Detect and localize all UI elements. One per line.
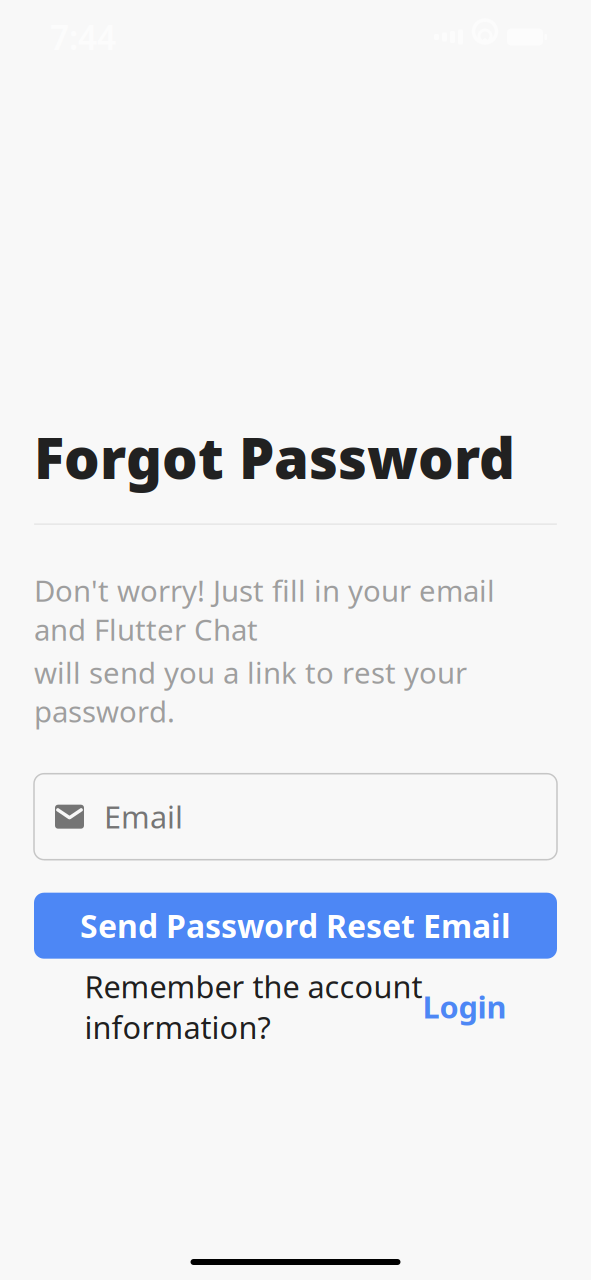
- staticText: Remember the account information?: [84, 966, 422, 1047]
- staticText: will send you a link to rest your passwo…: [34, 653, 467, 731]
- staticText: Forgot Password: [34, 420, 515, 494]
- staticText: Login: [422, 986, 506, 1027]
- button[interactable]: Email: [34, 774, 557, 860]
- staticText: Email: [104, 796, 183, 837]
- staticText: Send Password Reset Email: [80, 904, 511, 947]
- button[interactable]: Login: [422, 986, 506, 1027]
- button[interactable]: Send Password Reset Email: [34, 893, 557, 959]
- staticText: Don't worry! Just fill in your email and…: [34, 571, 495, 649]
